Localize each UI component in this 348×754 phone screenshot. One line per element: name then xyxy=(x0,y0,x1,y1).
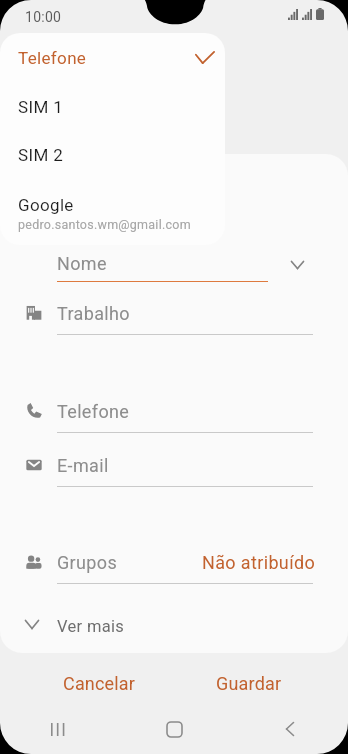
staticText: Telefone xyxy=(57,401,130,422)
staticText: Telefone xyxy=(18,48,87,68)
staticText: SIM 2 xyxy=(18,145,64,165)
button[interactable]: Recents xyxy=(0,704,116,754)
staticText: E-mail xyxy=(57,455,109,476)
button[interactable]: Google xyxy=(0,186,225,245)
staticText: pedro.santos.wm@gmail.com xyxy=(18,217,191,232)
staticText: Google xyxy=(18,195,74,215)
staticText: Ver mais xyxy=(57,617,125,636)
button[interactable]: Back xyxy=(232,704,348,754)
button[interactable]: Trabalho xyxy=(0,297,348,335)
staticText: Nome xyxy=(57,253,107,274)
button[interactable]: Cancelar xyxy=(25,663,174,703)
staticText: Guardar xyxy=(216,673,282,694)
button[interactable]: SIM 2 xyxy=(0,136,225,184)
staticText: Não atribuído xyxy=(202,552,316,573)
button[interactable]: Ver mais xyxy=(0,604,348,646)
button[interactable]: Home xyxy=(116,704,232,754)
staticText: SIM 1 xyxy=(18,97,64,117)
button[interactable]: Grupos xyxy=(0,546,348,584)
staticText: 10:00 xyxy=(25,9,62,25)
button[interactable]: Telefone xyxy=(0,395,348,433)
button[interactable]: Telefone xyxy=(0,39,225,87)
button[interactable]: Nome xyxy=(0,247,348,285)
staticText: Trabalho xyxy=(57,303,130,324)
staticText: Grupos xyxy=(57,552,118,573)
staticText: Cancelar xyxy=(63,673,136,694)
button[interactable]: SIM 1 xyxy=(0,88,225,136)
button[interactable]: E-mail xyxy=(0,449,348,487)
button[interactable]: Guardar xyxy=(174,663,323,703)
